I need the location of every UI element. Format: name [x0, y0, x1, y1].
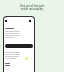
staticText: Set and forget — [0, 3, 64, 8]
staticText: with autopay — [0, 6, 64, 11]
button[interactable]: Close — [28, 19, 31, 22]
button[interactable]: Back — [4, 19, 7, 22]
button[interactable] — [5, 44, 33, 48]
